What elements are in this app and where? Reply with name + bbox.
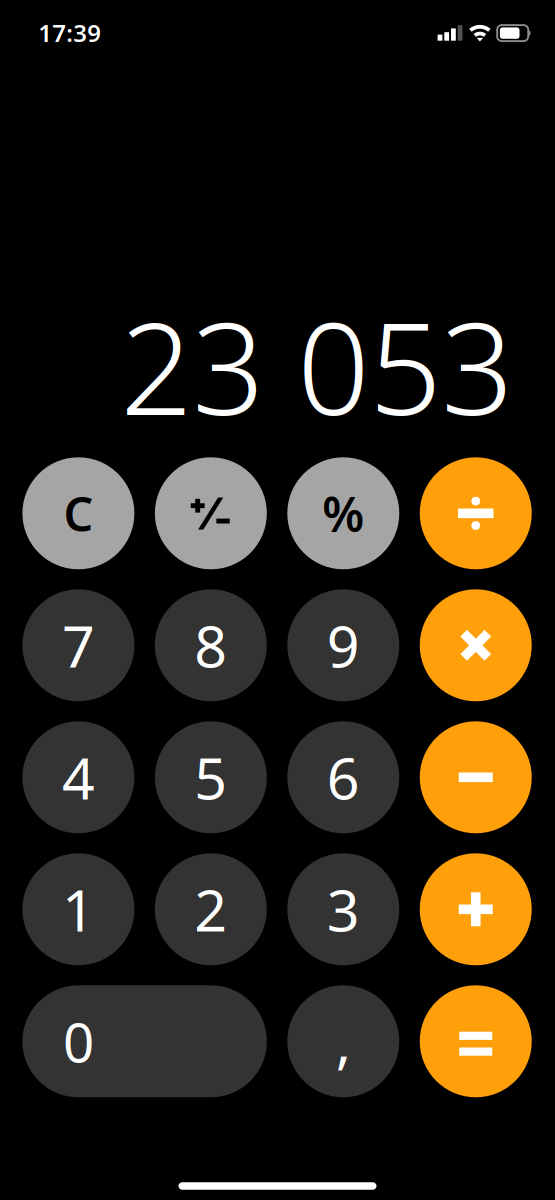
- button[interactable]: Toggle sign: [155, 457, 267, 569]
- staticText: 9: [327, 607, 360, 683]
- staticText: 6: [327, 739, 360, 815]
- button[interactable]: 2: [155, 853, 267, 965]
- button[interactable]: 7: [22, 589, 134, 701]
- button[interactable]: 0: [22, 985, 267, 1097]
- staticText: 2: [194, 871, 227, 947]
- staticText: 1: [62, 871, 95, 947]
- staticText: C: [63, 482, 93, 544]
- button[interactable]: 1: [22, 853, 134, 965]
- staticText: 4: [62, 739, 95, 815]
- button[interactable]: Equals: [420, 985, 532, 1097]
- staticText: 8: [194, 607, 227, 683]
- staticText: 3: [327, 871, 360, 947]
- staticText: 23 053: [120, 282, 513, 450]
- button[interactable]: ,: [287, 985, 399, 1097]
- staticText: ,: [336, 1003, 351, 1079]
- staticText: 5: [194, 739, 227, 815]
- button[interactable]: Divide: [420, 457, 532, 569]
- button[interactable]: 3: [287, 853, 399, 965]
- staticText: 17:39: [38, 17, 101, 49]
- button[interactable]: 4: [22, 721, 134, 833]
- button[interactable]: 6: [287, 721, 399, 833]
- staticText: %: [322, 481, 364, 545]
- button[interactable]: C: [22, 457, 134, 569]
- button[interactable]: 5: [155, 721, 267, 833]
- button[interactable]: 9: [287, 589, 399, 701]
- staticText: 7: [62, 607, 95, 683]
- button[interactable]: Multiply: [420, 589, 532, 701]
- button[interactable]: 8: [155, 589, 267, 701]
- button[interactable]: Add: [420, 853, 532, 965]
- button[interactable]: %: [287, 457, 399, 569]
- staticText: 0: [63, 1005, 94, 1078]
- button[interactable]: Subtract: [420, 721, 532, 833]
